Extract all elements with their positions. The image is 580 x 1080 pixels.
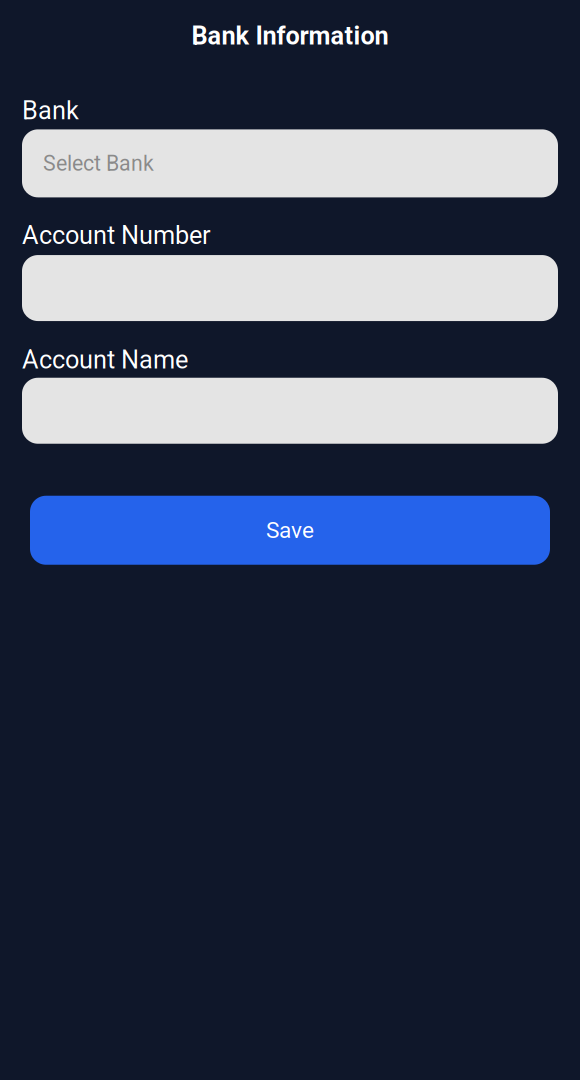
button[interactable]: Account Name xyxy=(22,378,558,444)
staticText: Bank xyxy=(22,96,79,125)
staticText: Bank Information xyxy=(191,21,388,51)
staticText: Account Number xyxy=(22,220,211,250)
button[interactable]: Account Number xyxy=(22,255,558,321)
staticText: Save xyxy=(266,517,314,544)
staticText: Account Name xyxy=(22,345,188,375)
button[interactable]: Save xyxy=(30,496,550,565)
staticText: Select Bank xyxy=(43,151,154,176)
button[interactable]: Select Bank xyxy=(22,129,558,197)
